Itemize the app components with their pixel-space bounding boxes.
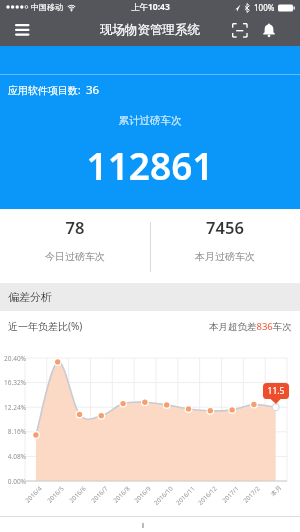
- staticText: 12.24%: [0, 403, 26, 412]
- button[interactable]: [262, 23, 276, 38]
- staticText: 中国移动: [31, 2, 63, 12]
- staticText: 近一年负差比(%): [8, 319, 83, 333]
- staticText: 偏差分析: [8, 290, 52, 304]
- button[interactable]: 7456: [150, 209, 300, 283]
- staticText: 20.40%: [0, 354, 26, 363]
- button[interactable]: [232, 23, 248, 38]
- staticText: 现场物资管理系统: [100, 22, 200, 38]
- staticText: 应用软件项目数:: [8, 83, 81, 97]
- staticText: 本月超负差836车次: [209, 320, 292, 333]
- staticText: 本月过磅车次: [150, 250, 300, 263]
- staticText: 累计过磅车次: [0, 114, 300, 127]
- staticText: 4.08%: [0, 452, 26, 461]
- staticText: 2016/7: [89, 484, 109, 504]
- staticText: 2016/6: [67, 484, 87, 504]
- staticText: 2016/4: [23, 484, 43, 504]
- staticText: 2016/10: [152, 484, 174, 506]
- staticText: 今日过磅车次: [0, 250, 150, 263]
- staticText: 0.00%: [0, 477, 26, 486]
- staticText: 78: [0, 216, 150, 238]
- staticText: 7456: [150, 216, 300, 238]
- staticText: 2017/2: [241, 484, 261, 504]
- staticText: 16.32%: [0, 378, 26, 387]
- staticText: 2016/5: [45, 484, 65, 504]
- staticText: 上午10:43: [131, 1, 170, 13]
- staticText: 2016/9: [132, 484, 152, 504]
- staticText: 100%: [254, 2, 275, 13]
- staticText: 8.16%: [0, 427, 26, 436]
- staticText: 2016/11: [174, 484, 196, 506]
- staticText: 112861: [0, 140, 300, 190]
- button[interactable]: [15, 24, 30, 36]
- staticText: 11.5: [263, 385, 289, 397]
- staticText: 2016/8: [111, 484, 131, 504]
- staticText: 本月: [269, 483, 284, 498]
- staticText: 2016/12: [196, 484, 218, 506]
- button[interactable]: 78: [0, 209, 150, 283]
- staticText: 2017/1: [220, 484, 240, 504]
- staticText: 36: [86, 82, 100, 98]
